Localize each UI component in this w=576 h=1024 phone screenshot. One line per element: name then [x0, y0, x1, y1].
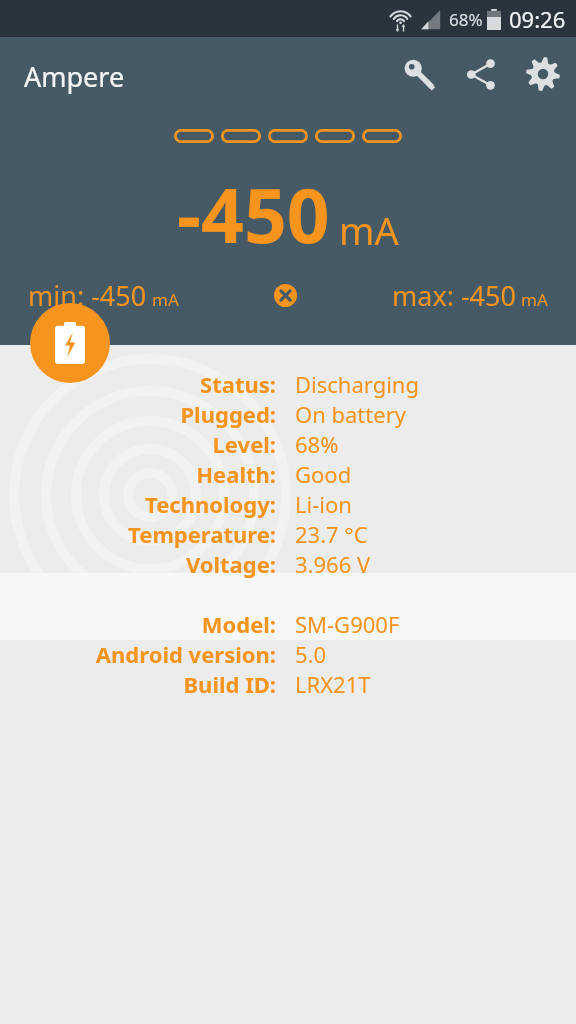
- staticText: Ampere: [24, 58, 125, 95]
- staticText: Li-ion: [295, 489, 352, 519]
- staticText: 09:26: [509, 4, 566, 34]
- staticText: Level:: [212, 429, 276, 459]
- staticText: Discharging: [295, 369, 419, 399]
- staticText: 5.0: [295, 639, 327, 669]
- staticText: min: -450: [28, 277, 147, 314]
- button[interactable]: Settings: [512, 43, 574, 105]
- staticText: mA: [521, 288, 548, 311]
- staticText: Build ID:: [183, 669, 276, 699]
- button[interactable]: Reset minimum and maximum: [262, 272, 308, 318]
- staticText: SM-G900F: [295, 609, 400, 639]
- staticText: Temperature:: [128, 519, 276, 549]
- staticText: Voltage:: [185, 549, 276, 579]
- button[interactable]: Unlock pro version: [388, 43, 450, 105]
- button[interactable]: Share: [450, 43, 512, 105]
- staticText: Health:: [196, 459, 276, 489]
- staticText: LRX21T: [295, 669, 371, 699]
- staticText: 3.966 V: [295, 549, 371, 579]
- staticText: 68%: [295, 429, 339, 459]
- staticText: -450: [177, 163, 330, 265]
- staticText: Technology:: [145, 489, 276, 519]
- staticText: Model:: [201, 609, 276, 639]
- staticText: Plugged:: [180, 399, 276, 429]
- staticText: max: -450: [392, 277, 516, 314]
- staticText: 23.7 °C: [295, 519, 368, 549]
- staticText: Status:: [200, 369, 276, 399]
- staticText: On battery: [295, 399, 406, 429]
- staticText: mA: [339, 204, 399, 256]
- staticText: 68%: [449, 8, 483, 31]
- staticText: Good: [295, 459, 352, 489]
- staticText: mA: [152, 288, 179, 311]
- staticText: Android version:: [95, 639, 276, 669]
- button[interactable]: Battery charging mode: [30, 303, 110, 383]
